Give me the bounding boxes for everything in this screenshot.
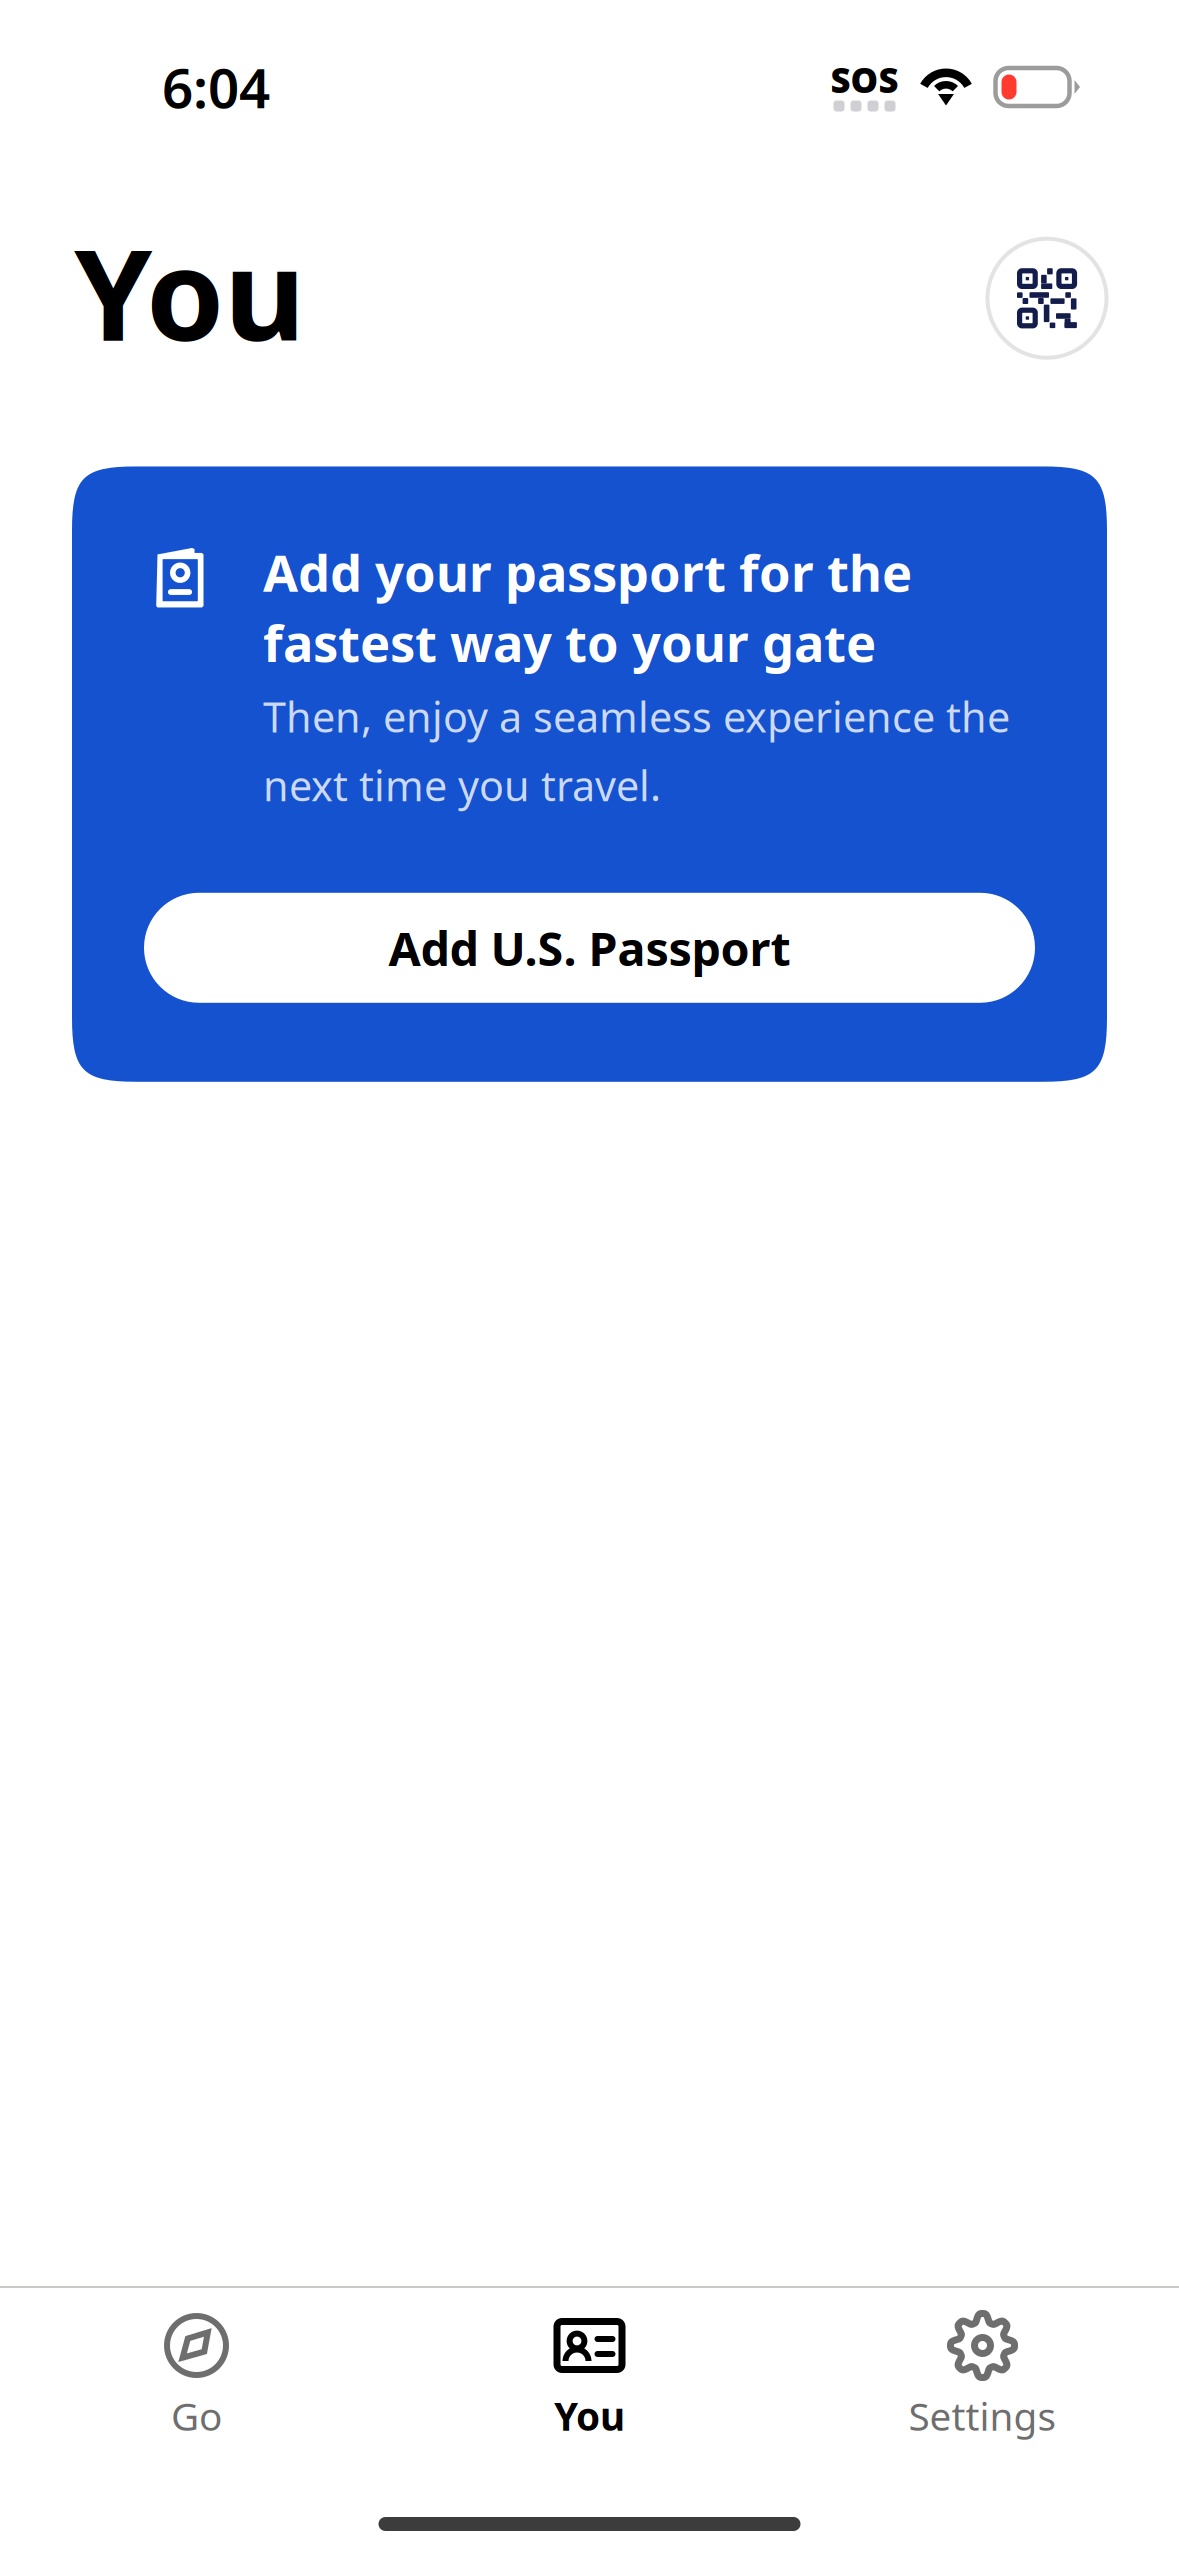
- staticText: Go: [171, 2390, 222, 2441]
- button[interactable]: You: [393, 2288, 786, 2441]
- button[interactable]: Add U.S. Passport: [144, 893, 1035, 1003]
- button[interactable]: Go: [0, 2288, 393, 2441]
- staticText: Add U.S. Passport: [388, 917, 790, 979]
- staticText: You: [74, 209, 305, 375]
- staticText: Then, enjoy a seamless experience the ne…: [263, 689, 1010, 813]
- staticText: You: [554, 2390, 625, 2441]
- staticText: Add your passport for the fastest way to…: [263, 538, 912, 676]
- staticText: Settings: [908, 2390, 1056, 2441]
- staticText: 6:04: [162, 51, 270, 123]
- staticText: SOS: [830, 56, 898, 102]
- button[interactable]: Settings: [786, 2288, 1179, 2441]
- button[interactable]: Show QR code: [986, 231, 1108, 353]
